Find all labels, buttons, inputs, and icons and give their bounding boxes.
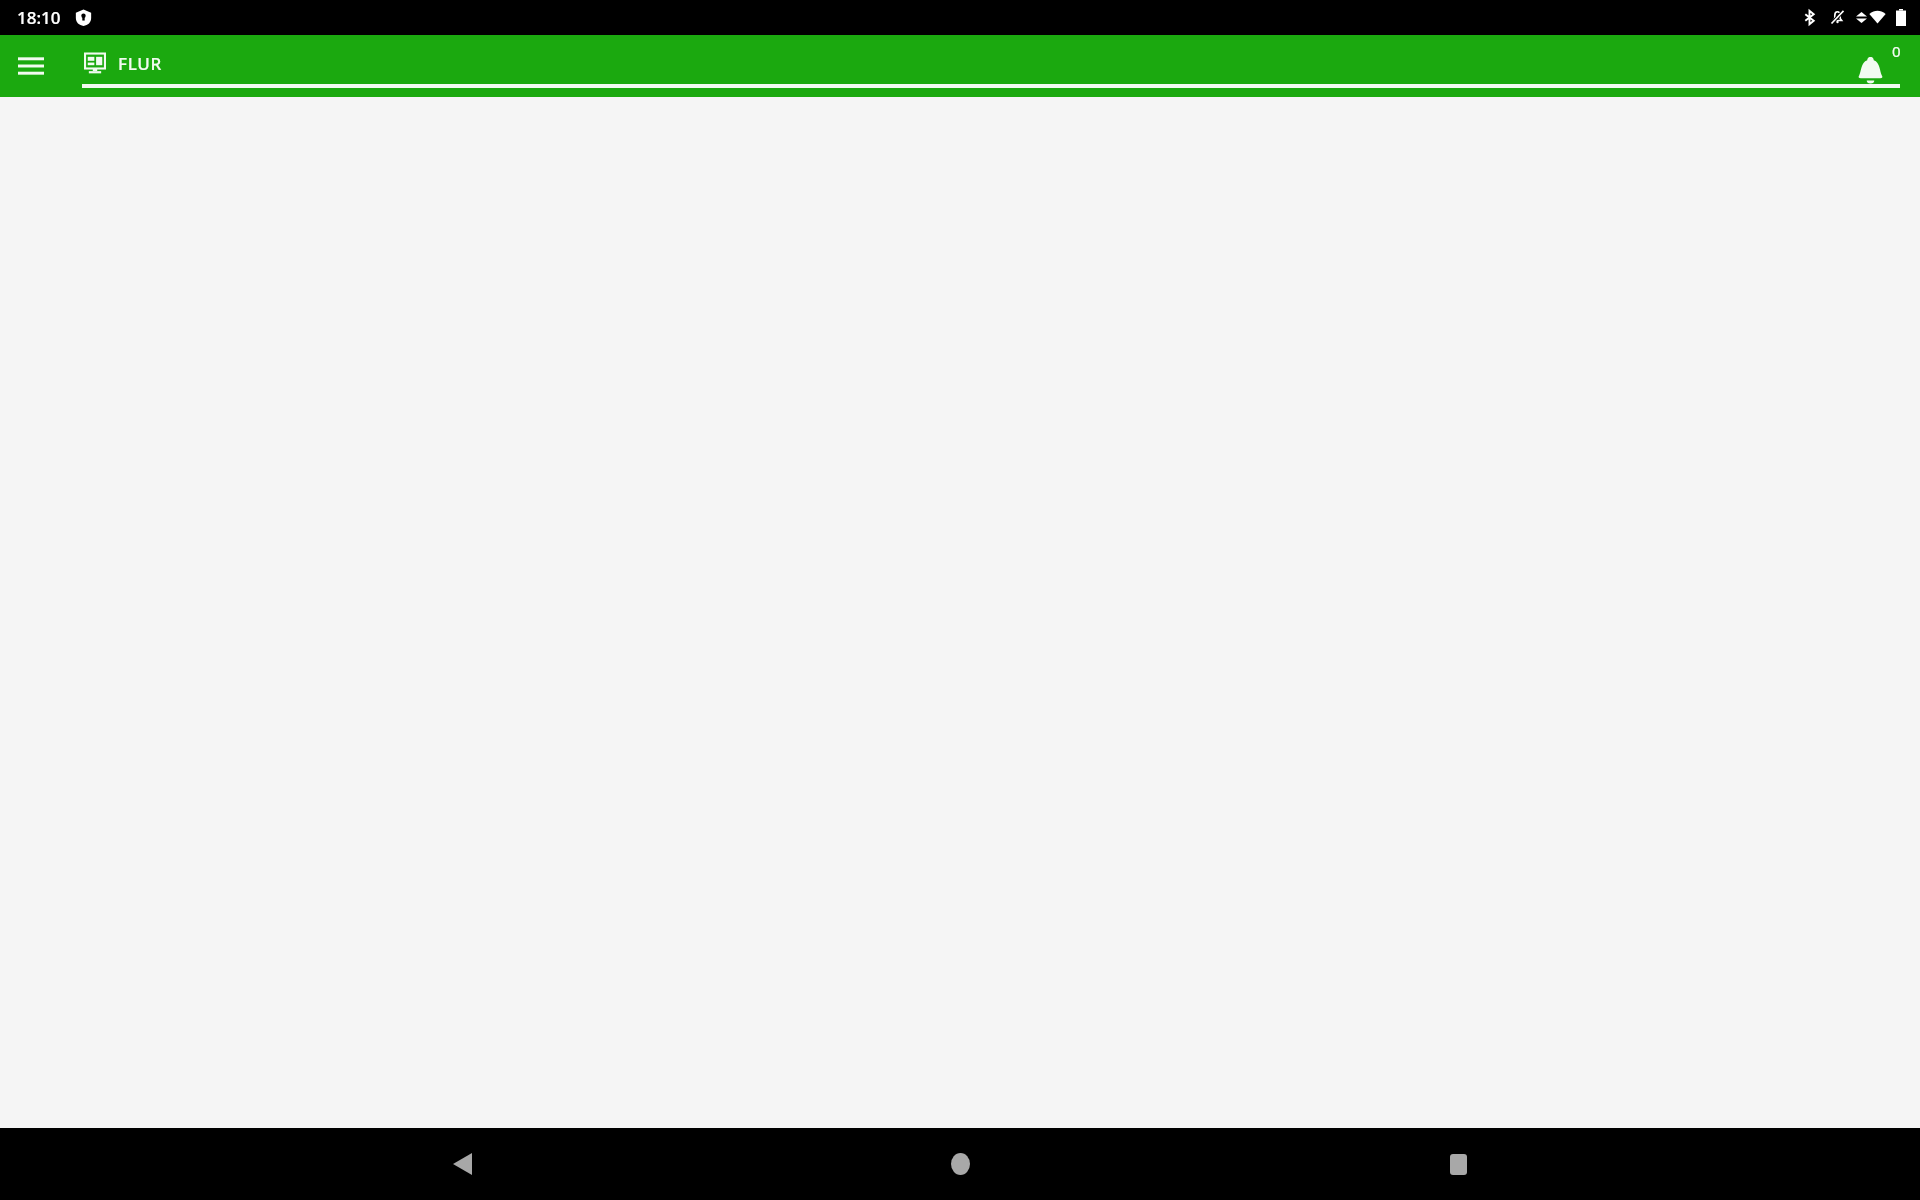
button[interactable]: FLUR [62, 35, 1920, 97]
button[interactable]: Home [924, 1128, 996, 1200]
staticText: 18:10 [17, 6, 61, 29]
button[interactable]: Back [426, 1128, 498, 1200]
button[interactable]: Open navigation menu [0, 35, 62, 97]
staticText: 0 [1892, 41, 1901, 61]
button[interactable]: Notifications, 0 unread [1846, 39, 1900, 93]
button[interactable]: Recent apps [1422, 1128, 1494, 1200]
staticText: FLUR [118, 52, 162, 75]
